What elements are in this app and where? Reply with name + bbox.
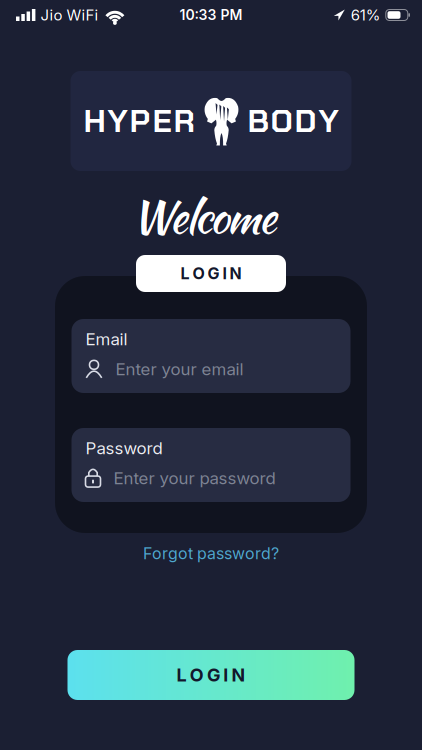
staticText: Y (318, 100, 338, 142)
button[interactable]: Email (71, 319, 350, 393)
staticText: Forgot password? (143, 544, 279, 563)
staticText: D (294, 100, 316, 142)
staticText: Email (85, 329, 127, 349)
staticText: R (173, 100, 195, 142)
staticText: 61% (351, 6, 381, 24)
staticText: Enter your password (113, 468, 275, 488)
button[interactable]: Password (71, 428, 350, 502)
staticText: I (223, 664, 228, 686)
staticText: N (229, 264, 241, 283)
staticText: O (192, 264, 204, 283)
button[interactable]: L (136, 255, 286, 292)
button[interactable]: L (67, 650, 354, 700)
staticText: B (247, 100, 268, 142)
staticText: O (190, 664, 204, 686)
staticText: Enter your email (115, 359, 243, 379)
staticText: Y (107, 100, 127, 142)
staticText: E (152, 100, 171, 142)
staticText: Welcome (131, 185, 276, 249)
staticText: Jio WiFi (40, 6, 98, 24)
staticText: G (207, 664, 220, 686)
staticText: H (83, 100, 105, 142)
staticText: Password (85, 438, 162, 458)
staticText: L (177, 664, 187, 686)
staticText: G (207, 264, 219, 283)
staticText: L (180, 264, 189, 283)
staticText: N (231, 664, 245, 686)
staticText: P (129, 100, 150, 142)
staticText: I (222, 264, 226, 283)
staticText: O (270, 100, 292, 142)
button[interactable]: Forgot password? (143, 544, 279, 563)
staticText: 10:33 PM (179, 7, 242, 23)
